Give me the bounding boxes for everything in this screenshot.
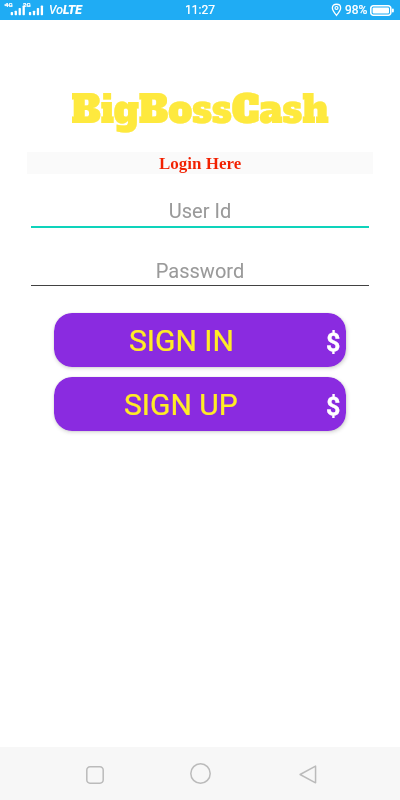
staticText: LTE [63,3,82,17]
button[interactable]: SIGN IN [54,313,346,367]
staticText: User Id [0,199,400,222]
staticText: 4G [5,1,13,8]
staticText: BigBossCash [0,84,400,136]
staticText: SIGN UP [124,387,238,422]
button[interactable]: Home [157,747,244,800]
staticText: 98% [345,3,368,17]
staticText: Login Here [159,154,242,173]
button[interactable]: Back [264,747,351,800]
staticText: Password [0,259,400,282]
staticText: 11:27 [0,3,400,17]
staticText: 2G [23,1,31,8]
staticText: SIGN IN [129,323,234,358]
staticText: $ [326,392,341,421]
staticText: Vo [49,3,63,17]
button[interactable]: Recents [51,747,138,800]
button[interactable]: SIGN UP [54,377,346,431]
staticText: $ [326,328,341,357]
